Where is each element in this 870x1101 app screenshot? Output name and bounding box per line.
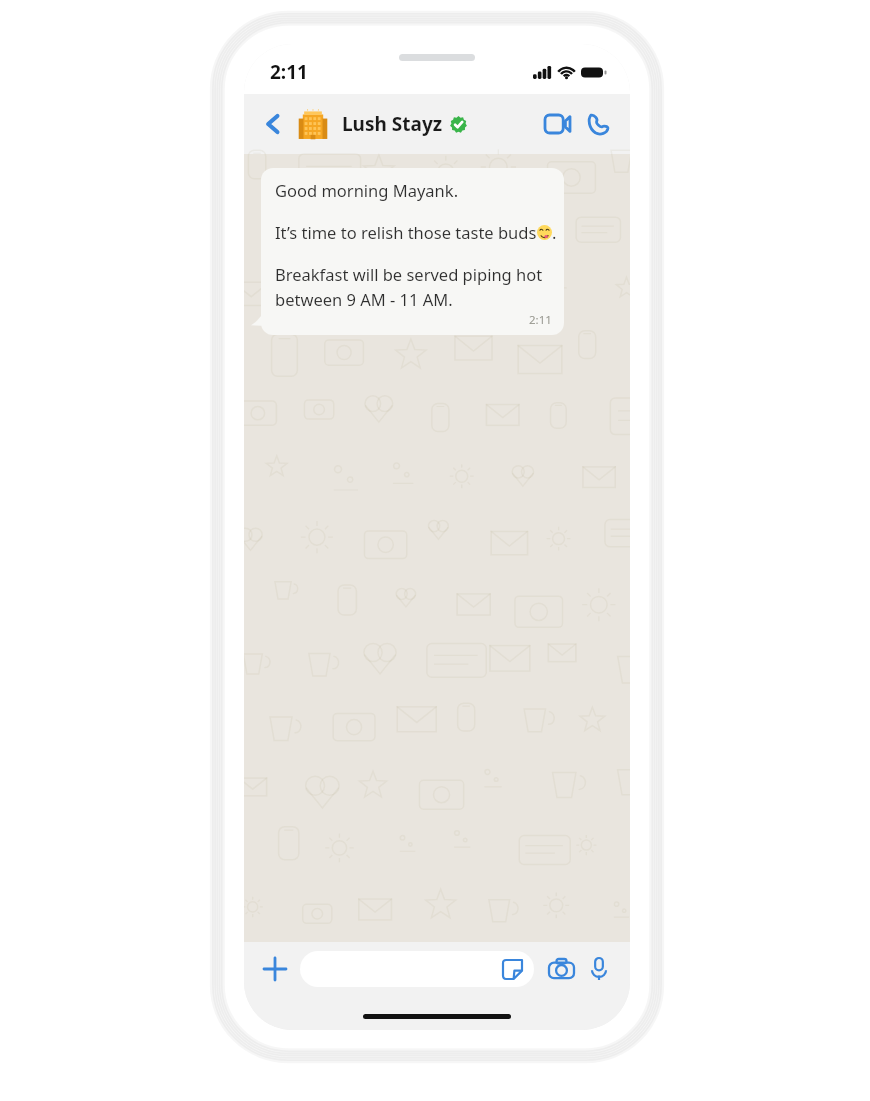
button[interactable]: Camera <box>542 950 580 988</box>
button[interactable]: Back <box>256 107 290 141</box>
staticText: 2:11 <box>529 312 552 328</box>
staticText: 2:11 <box>270 59 308 85</box>
button[interactable]: Stickers <box>300 951 534 987</box>
staticText: Good morning Mayank. <box>275 179 459 201</box>
button[interactable]: Stickers <box>499 956 525 982</box>
button[interactable]: Lush Stayz <box>296 107 538 141</box>
button[interactable]: Attach <box>256 950 294 988</box>
staticText: Lush Stayz <box>342 111 443 137</box>
button[interactable]: Video call <box>538 104 578 144</box>
button[interactable]: Voice call <box>578 104 618 144</box>
button[interactable]: Voice message <box>580 950 618 988</box>
staticText: Breakfast will be served piping hot betw… <box>275 263 545 310</box>
button[interactable]: Good morning Mayank. <box>261 168 564 335</box>
staticText: It’s time to relish those taste buds <box>275 221 537 243</box>
